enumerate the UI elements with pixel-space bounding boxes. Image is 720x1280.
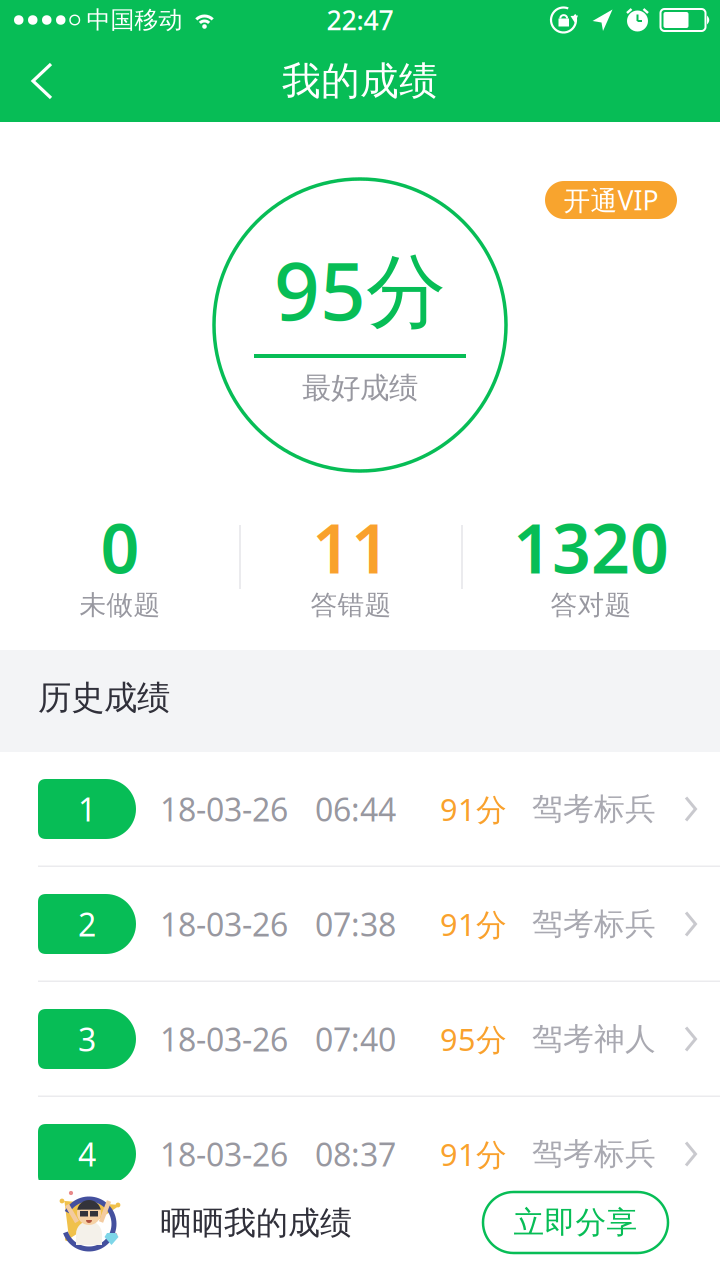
staticText: 驾考标兵 <box>532 905 656 943</box>
staticText: 18-03-26 <box>160 788 288 830</box>
staticText: 91分 <box>440 1134 507 1174</box>
button[interactable]: 2 <box>0 867 720 982</box>
staticText: 07:38 <box>315 903 396 945</box>
staticText: 晒晒我的成绩 <box>160 1203 352 1243</box>
staticText: 95分 <box>274 236 446 342</box>
button[interactable]: 4 <box>0 1097 720 1212</box>
staticText: 07:40 <box>315 1018 396 1060</box>
button[interactable] <box>0 40 78 122</box>
staticText: 驾考标兵 <box>532 1135 656 1173</box>
staticText: 22:47 <box>326 2 393 38</box>
staticText: 答对题 <box>550 589 631 621</box>
staticText: 我的成绩 <box>282 57 438 105</box>
staticText: 08:37 <box>315 1133 396 1175</box>
staticText: 未做题 <box>79 589 160 621</box>
staticText: 0 <box>100 502 139 592</box>
staticText: 18-03-26 <box>160 1133 288 1175</box>
staticText: 91分 <box>440 789 507 829</box>
button[interactable]: 开通VIP <box>545 181 677 219</box>
staticText: 06:44 <box>315 788 396 830</box>
staticText: 答错题 <box>310 589 391 621</box>
staticText: 驾考标兵 <box>532 790 656 828</box>
staticText: 95分 <box>440 1019 507 1059</box>
button[interactable]: 1 <box>0 752 720 867</box>
button[interactable]: 3 <box>0 982 720 1097</box>
staticText: 11 <box>312 502 390 592</box>
button[interactable]: 立即分享 <box>483 1192 668 1253</box>
staticText: 1320 <box>513 502 669 592</box>
staticText: 2 <box>78 903 96 945</box>
staticText: 开通VIP <box>563 182 658 218</box>
staticText: 91分 <box>440 904 507 944</box>
staticText: 18-03-26 <box>160 903 288 945</box>
staticText: 4 <box>78 1133 96 1175</box>
staticText: 中国移动 <box>86 5 182 35</box>
staticText: 历史成绩 <box>38 677 170 718</box>
staticText: 驾考神人 <box>532 1020 656 1058</box>
staticText: 最好成绩 <box>302 370 418 406</box>
staticText: 立即分享 <box>513 1204 637 1241</box>
staticText: 18-03-26 <box>160 1018 288 1060</box>
staticText: 3 <box>78 1018 96 1060</box>
staticText: 1 <box>78 788 96 830</box>
